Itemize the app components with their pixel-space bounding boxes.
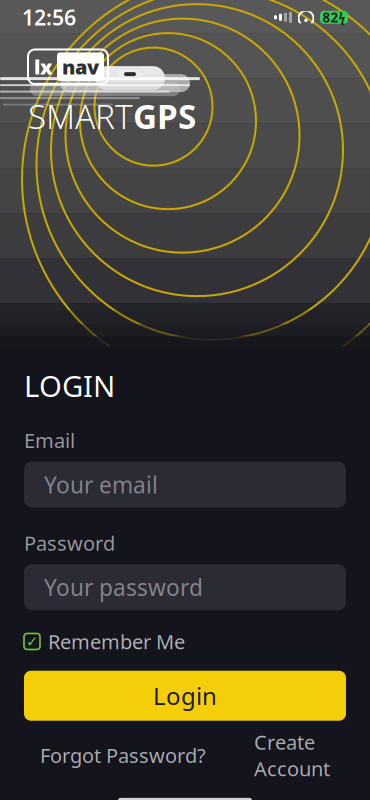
staticText: lx xyxy=(34,53,53,80)
staticText: Password xyxy=(24,530,115,556)
staticText: LOGIN xyxy=(24,366,115,405)
staticText: ✓ xyxy=(26,633,38,650)
staticText: GPS xyxy=(133,94,196,138)
staticText: Email xyxy=(24,427,75,454)
staticText: Forgot Password? xyxy=(40,742,206,769)
button[interactable]: Login xyxy=(24,671,346,721)
staticText: Your password xyxy=(44,572,203,602)
staticText: SMART xyxy=(28,94,133,138)
staticText: Login xyxy=(153,680,217,712)
button[interactable]: ✓ xyxy=(24,624,346,659)
staticText: Your email xyxy=(44,470,158,500)
staticText: 12:56 xyxy=(22,3,76,31)
staticText: Create Account xyxy=(254,729,330,782)
button[interactable]: Create Account xyxy=(248,721,336,790)
staticText: ϟ xyxy=(338,9,345,25)
staticText: Remember Me xyxy=(48,628,185,655)
staticText: 82 xyxy=(322,8,338,26)
button[interactable]: Your password xyxy=(24,564,346,610)
button[interactable]: Your email xyxy=(24,462,346,508)
button[interactable]: Forgot Password? xyxy=(34,734,212,777)
staticText: nav xyxy=(62,53,99,80)
